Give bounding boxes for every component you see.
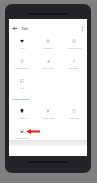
staticText: Night Light [43,117,54,120]
button[interactable]: Cast [9,72,35,90]
staticText: Mobile data [42,67,54,70]
button[interactable]: Location [9,102,35,120]
staticText: Nearby Share Stay Shared [15,137,29,143]
staticText: Do not disturb [67,47,82,50]
staticText: Edit [22,26,29,31]
staticText: Bluetooth [43,47,53,50]
button[interactable]: Back [10,24,19,33]
staticText: Drag to add tiles [12,98,30,101]
button[interactable]: Do not disturb [61,32,87,50]
staticText: Battery Saver [15,67,29,70]
staticText: Location [18,117,27,120]
button[interactable]: Data Saver [61,102,87,120]
staticText: Data Saver [69,117,80,120]
button[interactable]: More options [78,24,87,33]
button[interactable]: Night Light [35,102,61,120]
staticText: Wi-Fi [20,47,25,50]
staticText: Cast [20,87,25,90]
button[interactable]: Wi-Fi [9,32,35,50]
button[interactable]: Battery Saver [9,52,35,70]
staticText: Flashlight [69,67,79,70]
button[interactable]: Mobile data [35,52,61,70]
button[interactable]: Nearby Share Stay Shared [9,122,35,140]
button[interactable]: Flashlight [61,52,87,70]
button[interactable]: Bluetooth [35,32,61,50]
